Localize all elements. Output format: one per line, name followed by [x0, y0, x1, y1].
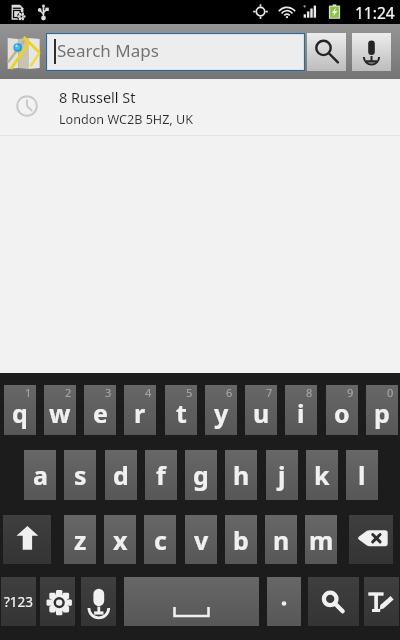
button[interactable]: Maps [6, 35, 40, 69]
staticText: 8 Russell St [59, 87, 136, 107]
staticText: 6 [226, 385, 233, 400]
button[interactable]: s [64, 450, 96, 500]
staticText: Search Maps [57, 39, 159, 62]
staticText: m [309, 523, 334, 557]
button[interactable]: Search [308, 577, 359, 626]
staticText: 0 [387, 385, 394, 400]
staticText: 4 [145, 385, 152, 400]
button[interactable]: m [305, 515, 337, 564]
button[interactable]: d [105, 450, 137, 500]
staticText: j [278, 458, 286, 492]
staticText: i [297, 396, 305, 430]
staticText: 3 [105, 385, 112, 400]
button[interactable]: 2 [44, 385, 76, 435]
staticText: e [93, 396, 108, 430]
button[interactable]: 3 [84, 385, 116, 435]
button[interactable]: f [145, 450, 177, 500]
staticText: 5 [186, 385, 193, 400]
button[interactable]: 8 Russell St [0, 79, 400, 135]
button[interactable]: Symbols [1, 577, 36, 626]
button[interactable]: 4 [124, 385, 156, 435]
button[interactable]: Voice search [352, 33, 391, 71]
staticText: g [193, 458, 209, 492]
staticText: f [156, 458, 166, 492]
button[interactable]: 0 [366, 385, 398, 435]
button[interactable]: 5 [165, 385, 197, 435]
staticText: p [374, 396, 390, 430]
staticText: b [233, 523, 249, 557]
staticText: l [358, 458, 366, 492]
staticText: v [194, 523, 209, 557]
button[interactable]: n [265, 515, 297, 564]
button[interactable]: Backspace [349, 515, 393, 564]
staticText: d [113, 458, 129, 492]
staticText: z [74, 523, 87, 557]
staticText: q [12, 396, 28, 430]
button[interactable]: h [225, 450, 257, 500]
button[interactable]: 9 [326, 385, 358, 435]
staticText: o [334, 396, 350, 430]
staticText: 8 [306, 385, 313, 400]
staticText: h [233, 458, 250, 492]
staticText: 7 [266, 385, 273, 400]
button[interactable]: Voice input [81, 577, 116, 626]
button[interactable]: Input method [364, 577, 399, 626]
button[interactable]: 7 [245, 385, 277, 435]
staticText: ?123 [4, 593, 34, 611]
staticText: 9 [347, 385, 354, 400]
staticText: 11:24 [355, 2, 395, 23]
staticText: u [253, 396, 270, 430]
button[interactable]: c [144, 515, 176, 564]
staticText: y [214, 396, 229, 430]
button[interactable]: Space [124, 577, 259, 626]
button[interactable]: a [24, 450, 56, 500]
button[interactable]: Shift [3, 515, 51, 564]
button[interactable]: 8 [285, 385, 317, 435]
button[interactable]: Search [307, 33, 346, 71]
staticText: r [134, 396, 146, 430]
button[interactable]: Period [267, 577, 301, 626]
button[interactable]: k [306, 450, 338, 500]
staticText: c [154, 523, 167, 557]
button[interactable]: Search Maps [48, 35, 303, 69]
staticText: k [314, 458, 330, 492]
button[interactable]: 1 [4, 385, 36, 435]
button[interactable]: g [185, 450, 217, 500]
staticText: a [33, 458, 48, 492]
staticText: w [49, 396, 71, 430]
button[interactable]: 6 [205, 385, 237, 435]
button[interactable]: x [104, 515, 136, 564]
button[interactable]: Settings [40, 577, 75, 626]
button[interactable]: b [225, 515, 257, 564]
staticText: x [113, 523, 128, 557]
staticText: London WC2B 5HZ, UK [59, 111, 194, 128]
button[interactable]: j [266, 450, 298, 500]
button[interactable]: l [346, 450, 378, 500]
button[interactable]: z [64, 515, 96, 564]
staticText: 1 [25, 385, 32, 400]
staticText: 2 [65, 385, 72, 400]
staticText: n [273, 523, 290, 557]
staticText: s [74, 458, 87, 492]
staticText: t [176, 396, 187, 430]
button[interactable]: v [185, 515, 217, 564]
